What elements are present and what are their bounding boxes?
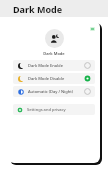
button[interactable]: Status (90, 27, 95, 31)
staticText: Automatic (Day / Night) (28, 89, 84, 94)
button[interactable]: Dark Mode Enable (13, 60, 95, 71)
button[interactable]: Settings and privacy (13, 104, 95, 115)
staticText: Dark Mode Disable (28, 76, 84, 81)
staticText: Dark Mode (13, 3, 63, 15)
staticText: Settings and privacy (27, 107, 66, 112)
button[interactable]: Dark Mode Disable (13, 73, 95, 84)
staticText: Dark Mode Enable (28, 63, 84, 68)
staticText: Dark Mode (43, 51, 65, 56)
button[interactable]: Automatic (Day / Night) (13, 86, 95, 97)
